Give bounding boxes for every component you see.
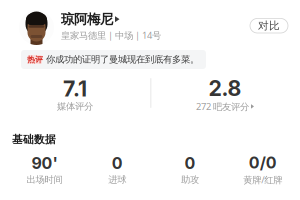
staticText: 热评 [27,55,43,64]
button[interactable]: 热评 [21,50,206,69]
staticText: 90' [31,154,57,173]
staticText: 7.1 [63,76,87,102]
staticText: 0/0 [249,153,277,172]
staticText: 琼阿梅尼 [61,11,113,27]
staticText: 助攻 [181,174,199,185]
staticText: 你成功的证明了曼城现在到底有多菜。 [46,54,199,65]
staticText: 0 [112,154,123,173]
staticText: 黄牌/红牌 [243,173,282,186]
staticText: 皇家马德里 | 中场 | 14号 [61,29,161,41]
button[interactable]: 对比 [250,18,288,33]
button[interactable]: 2.8 [150,75,300,113]
button[interactable]: 琼阿梅尼 [61,11,119,27]
staticText: 媒体评分 [57,101,93,112]
staticText: 出场时间 [26,174,62,185]
staticText: 272 吧友评分 [196,100,249,113]
staticText: 2.8 [208,75,241,101]
staticText: 基础数据 [12,133,56,146]
staticText: 对比 [258,19,280,32]
staticText: 进球 [108,174,126,185]
staticText: 0 [184,154,195,173]
